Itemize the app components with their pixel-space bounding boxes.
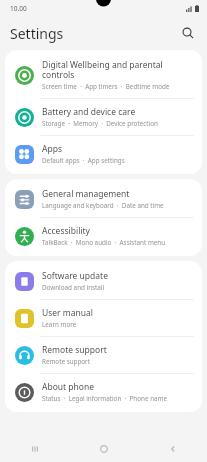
staticText: Remote support xyxy=(42,344,107,356)
staticText: About phone xyxy=(42,381,95,393)
staticText: Storage · Memory · Device protection xyxy=(42,119,158,128)
staticText: Accessibility xyxy=(42,225,90,237)
button[interactable]: Search xyxy=(177,22,199,44)
staticText: Software update xyxy=(42,270,108,282)
staticText: Settings xyxy=(10,24,64,43)
staticText: Learn more xyxy=(42,320,77,329)
staticText: Download and install xyxy=(42,283,105,292)
staticText: 10.00 xyxy=(10,4,27,13)
staticText: Battery and device care xyxy=(42,106,136,118)
staticText: General management xyxy=(42,188,130,200)
button[interactable]: About phone xyxy=(5,374,202,410)
staticText: Status · Legal information · Phone name xyxy=(42,394,167,403)
staticText: TalkBack · Mono audio · Assistant menu xyxy=(42,238,166,247)
button[interactable]: Battery and device care xyxy=(5,99,202,135)
button[interactable]: Digital Wellbeing and parental controls xyxy=(5,52,202,98)
staticText: Screen time · App timers · Bedtime mode xyxy=(42,82,170,91)
staticText: Remote support xyxy=(42,357,90,366)
button[interactable]: Apps xyxy=(5,136,202,172)
button[interactable]: Back xyxy=(138,436,207,462)
staticText: Apps xyxy=(42,143,62,155)
staticText: User manual xyxy=(42,307,93,319)
staticText: Digital Wellbeing and parental controls xyxy=(42,59,192,81)
staticText: Default apps · App settings xyxy=(42,156,125,165)
button[interactable]: User manual xyxy=(5,300,202,336)
button[interactable]: Home xyxy=(69,436,138,462)
staticText: Language and keyboard · Date and time xyxy=(42,201,164,210)
button[interactable]: Remote support xyxy=(5,337,202,373)
button[interactable]: Accessibility xyxy=(5,218,202,254)
button[interactable]: Software update xyxy=(5,263,202,299)
button[interactable]: Recents xyxy=(0,436,69,462)
button[interactable]: General management xyxy=(5,181,202,217)
